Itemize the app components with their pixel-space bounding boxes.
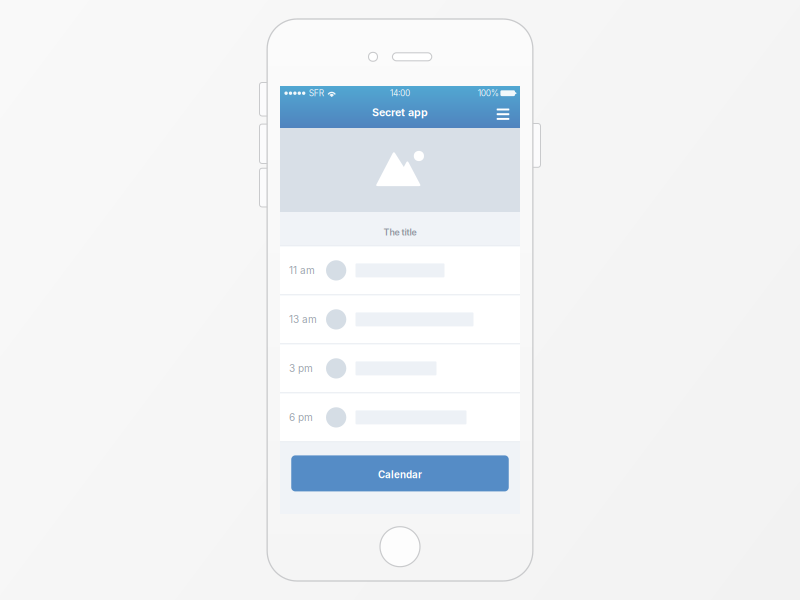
button[interactable]: Menu [488,103,518,125]
button[interactable]: 13 am [280,295,520,343]
staticText: 100% [478,88,499,98]
staticText: The title [383,227,416,238]
staticText: Calendar [378,469,422,480]
button[interactable]: 3 pm [280,344,520,392]
staticText: Secret app [372,106,428,119]
staticText: 3 pm [289,362,313,374]
staticText: 13 am [289,313,317,325]
staticText: 14:00 [390,88,410,98]
staticText: 11 am [289,264,315,276]
button[interactable]: 11 am [280,246,520,294]
staticText: SFR [309,88,324,98]
staticText: 6 pm [289,411,313,423]
button[interactable]: Calendar [291,455,509,491]
button[interactable]: 6 pm [280,393,520,441]
